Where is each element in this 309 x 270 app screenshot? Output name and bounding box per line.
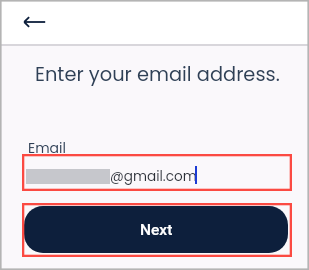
staticText: Next — [140, 221, 173, 239]
staticText: Email — [28, 138, 66, 158]
staticText: Enter your email address. — [35, 61, 280, 88]
button[interactable]: Back — [12, 6, 44, 38]
staticText: @gmail.com — [110, 167, 197, 186]
button[interactable]: Next — [24, 206, 288, 253]
